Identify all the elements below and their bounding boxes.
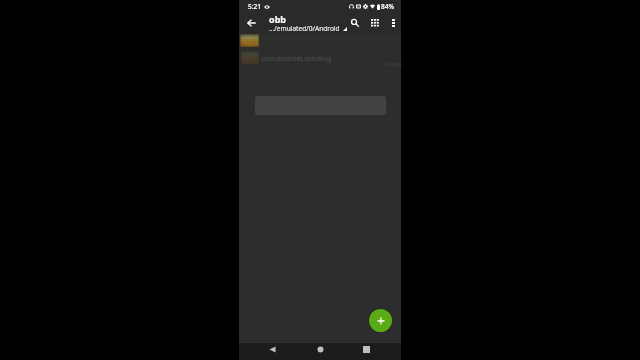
button[interactable]: Recent apps [354, 341, 378, 358]
staticText: com.android.vending [261, 54, 332, 64]
staticText: .../emulated/0/Android [269, 24, 340, 33]
staticText: 84% [381, 2, 394, 11]
button[interactable]: Search [345, 13, 365, 33]
button[interactable]: com.android.vending [239, 50, 401, 67]
button[interactable]: Back [260, 341, 284, 358]
button[interactable]: Back [240, 12, 262, 34]
staticText: obb [269, 13, 287, 25]
button[interactable]: Home [308, 341, 332, 358]
staticText: 5:21 [248, 2, 261, 11]
button[interactable]: Add [369, 309, 392, 332]
button[interactable]: More options [383, 13, 403, 33]
button[interactable]: Grid view [365, 13, 385, 33]
button[interactable] [239, 35, 401, 52]
staticText: 2 items [385, 60, 403, 67]
